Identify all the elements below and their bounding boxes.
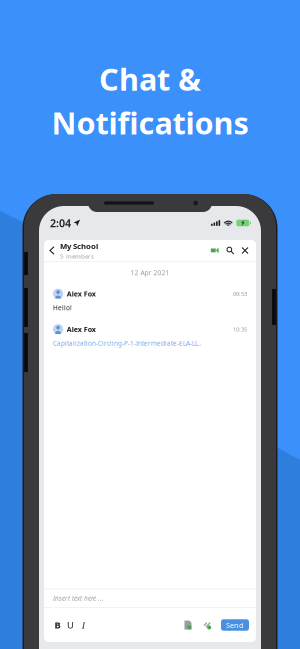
button[interactable]: Close [242,247,248,253]
staticText: Hello! [53,303,72,312]
button[interactable]: Video call [211,248,219,253]
button[interactable]: Send [221,619,249,631]
button[interactable]: U [64,608,77,642]
button[interactable]: Search [227,247,234,254]
button[interactable]: Back [44,240,60,261]
staticText: 12 Apr 2021 [130,268,169,277]
button[interactable]: Attach file [184,620,192,630]
button[interactable]: Attach link [202,620,212,630]
staticText: My School [60,241,98,251]
staticText: B [54,619,60,631]
staticText: 10:35 [233,325,247,333]
staticText: 09:53 [233,290,247,298]
staticText: U [67,619,74,631]
staticText: Alex Fox [67,289,96,299]
staticText: Alex Fox [67,324,96,334]
staticText: Send [226,620,244,630]
staticText: Notifications [51,102,248,144]
staticText: Chat & [99,58,201,100]
button[interactable]: B [51,608,64,642]
staticText: 5 members [60,252,94,260]
staticText: Insert text here ... [53,594,104,603]
staticText: I [82,619,85,631]
staticText: Capitalization-Circling-P-1-Intermediate… [53,339,202,347]
staticText: 2:04 [50,216,71,230]
button[interactable]: I [77,608,90,642]
